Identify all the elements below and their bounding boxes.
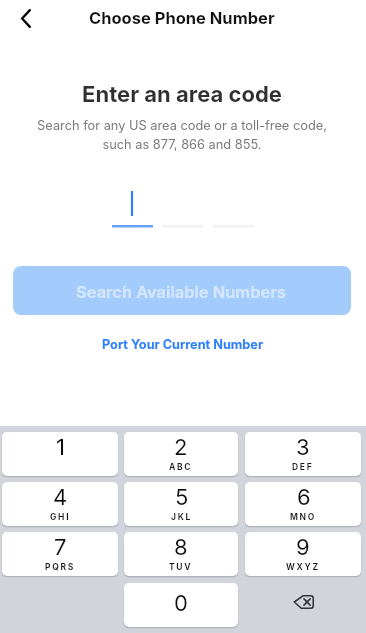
staticText: JKL (171, 512, 192, 522)
staticText: 6 (297, 484, 311, 511)
button[interactable]: Area code input (106, 185, 260, 233)
button[interactable]: Back (11, 3, 41, 33)
staticText: 2 (174, 434, 188, 461)
staticText: 5 (175, 484, 189, 511)
button[interactable]: Backspace (245, 583, 361, 627)
button[interactable]: Port Your Current Number (94, 332, 272, 356)
button[interactable]: 0 (124, 583, 238, 627)
staticText: DEF (292, 462, 314, 472)
button[interactable]: 2 (124, 432, 238, 476)
staticText: Search Available Numbers (76, 282, 286, 302)
button[interactable]: 8 (124, 532, 238, 576)
staticText: Enter an area code (0, 81, 365, 108)
button[interactable]: 3 (245, 432, 361, 476)
staticText: 0 (174, 590, 188, 617)
button[interactable]: 1 (2, 432, 118, 476)
button[interactable]: 6 (245, 482, 361, 526)
staticText: Search for any US area code or a toll-fr… (0, 118, 365, 152)
staticText: 1 (56, 434, 65, 461)
staticText: PQRS (45, 562, 76, 572)
staticText: 3 (296, 434, 310, 461)
staticText: 4 (53, 484, 68, 511)
staticText: GHI (50, 512, 71, 522)
staticText: ABC (169, 462, 193, 472)
staticText: Choose Phone Number (89, 8, 275, 28)
button[interactable]: 4 (2, 482, 118, 526)
button[interactable]: 7 (2, 532, 118, 576)
button[interactable]: Search Available Numbers (13, 266, 351, 315)
staticText: MNO (290, 512, 317, 522)
button[interactable]: 5 (124, 482, 238, 526)
staticText: Port Your Current Number (102, 337, 264, 352)
staticText: TUV (169, 562, 193, 572)
button[interactable]: 9 (245, 532, 361, 576)
staticText: WXYZ (286, 562, 320, 572)
staticText: 7 (54, 534, 67, 561)
staticText: 9 (296, 534, 310, 561)
staticText: 8 (174, 534, 188, 561)
